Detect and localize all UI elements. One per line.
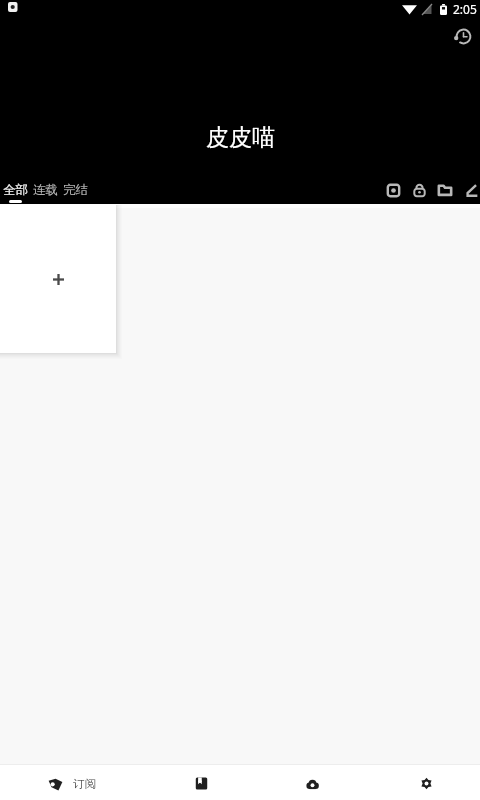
staticText: 连载 [33, 182, 58, 198]
button[interactable]: Folder [432, 178, 458, 202]
staticText: 2:05 [453, 1, 477, 17]
staticText: 完结 [63, 182, 88, 198]
button[interactable]: Settings [402, 767, 450, 800]
button[interactable]: Screenshot [380, 178, 406, 202]
button[interactable]: Cloud [288, 767, 336, 800]
staticText: 皮皮喵 [206, 123, 275, 152]
button[interactable]: 完结 [60, 178, 90, 203]
button[interactable]: 连载 [30, 178, 60, 203]
button[interactable]: 订阅 [20, 767, 123, 800]
button[interactable]: Add comic [0, 205, 116, 353]
staticText: 订阅 [73, 777, 96, 791]
button[interactable]: Lock [406, 178, 432, 202]
button[interactable]: Edit [458, 178, 480, 202]
button[interactable]: Library [177, 767, 225, 800]
button[interactable]: History [450, 23, 477, 50]
staticText: 全部 [3, 182, 28, 198]
button[interactable]: 全部 [0, 178, 30, 203]
